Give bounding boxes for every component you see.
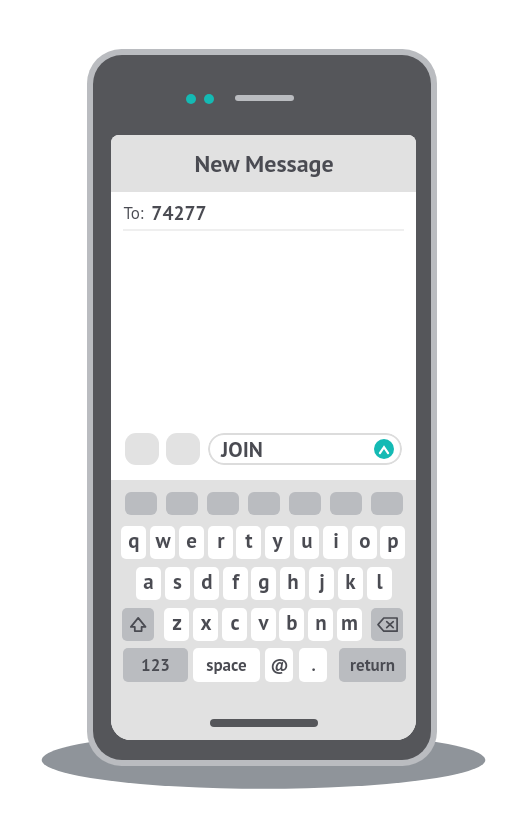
staticText: a [143, 568, 154, 595]
button[interactable]: Suggestion [371, 492, 403, 515]
staticText: space [206, 654, 247, 676]
button[interactable]: @ [265, 648, 293, 682]
button[interactable]: n [308, 608, 333, 641]
button[interactable]: New Message [111, 135, 416, 192]
staticText: i [333, 527, 339, 554]
button[interactable]: Suggestion [166, 492, 198, 515]
staticText: u [301, 527, 313, 554]
button[interactable]: Send [374, 439, 394, 459]
staticText: return [350, 654, 395, 676]
button[interactable]: i [323, 526, 348, 559]
button[interactable]: Suggestion [207, 492, 239, 515]
staticText: To: [123, 202, 144, 224]
button[interactable]: e [179, 526, 204, 559]
staticText: f [232, 568, 239, 595]
staticText: h [287, 568, 299, 595]
button[interactable]: g [251, 567, 276, 600]
button[interactable]: t [236, 526, 261, 559]
button[interactable]: q [121, 526, 146, 559]
button[interactable]: Camera [125, 433, 159, 465]
staticText: m [341, 609, 358, 636]
button[interactable]: Suggestion [248, 492, 280, 515]
button[interactable]: 123 [123, 648, 188, 682]
staticText: p [387, 527, 399, 554]
button[interactable]: c [222, 608, 247, 641]
staticText: n [315, 609, 327, 636]
staticText: x [200, 609, 212, 636]
staticText: 123 [141, 654, 170, 676]
button[interactable]: s [165, 567, 190, 600]
staticText: v [258, 609, 269, 636]
staticText: e [186, 527, 197, 554]
staticText: l [376, 568, 383, 595]
button[interactable]: Shift [122, 608, 154, 641]
button[interactable]: w [150, 526, 175, 559]
staticText: . [311, 654, 316, 676]
button[interactable]: z [164, 608, 189, 641]
button[interactable]: r [208, 526, 233, 559]
staticText: c [230, 609, 240, 636]
staticText: d [201, 568, 213, 595]
button[interactable]: Backspace [371, 608, 403, 641]
button[interactable]: k [338, 567, 363, 600]
button[interactable]: b [279, 608, 304, 641]
button[interactable]: l [367, 567, 392, 600]
staticText: b [286, 609, 298, 636]
button[interactable]: Home [210, 719, 318, 727]
button[interactable]: return [339, 648, 406, 682]
staticText: y [272, 527, 283, 554]
button[interactable]: d [194, 567, 219, 600]
staticText: t [245, 527, 253, 554]
button[interactable]: JOIN [208, 433, 402, 465]
staticText: z [172, 609, 182, 636]
button[interactable]: o [352, 526, 377, 559]
staticText: g [258, 568, 270, 595]
button[interactable]: y [265, 526, 290, 559]
button[interactable]: h [280, 567, 305, 600]
button[interactable]: space [193, 648, 260, 682]
button[interactable]: m [337, 608, 362, 641]
button[interactable]: f [223, 567, 248, 600]
button[interactable]: Suggestion [289, 492, 321, 515]
staticText: w [155, 527, 171, 554]
button[interactable]: Suggestion [125, 492, 157, 515]
staticText: @ [270, 654, 289, 676]
staticText: r [217, 527, 225, 554]
button[interactable]: a [136, 567, 161, 600]
button[interactable]: Attach [166, 433, 200, 465]
button[interactable]: . [299, 648, 327, 682]
staticText: o [359, 527, 371, 554]
staticText: k [345, 568, 356, 595]
staticText: JOIN [221, 435, 263, 463]
button[interactable]: p [380, 526, 405, 559]
staticText: j [319, 568, 325, 595]
staticText: 74277 [151, 200, 207, 225]
staticText: q [128, 527, 140, 554]
button[interactable]: Suggestion [330, 492, 362, 515]
button[interactable]: u [294, 526, 319, 559]
button[interactable]: x [193, 608, 218, 641]
button[interactable]: j [309, 567, 334, 600]
staticText: s [173, 568, 182, 595]
staticText: New Message [194, 148, 334, 179]
button[interactable]: To: [111, 192, 416, 233]
button[interactable]: v [251, 608, 276, 641]
